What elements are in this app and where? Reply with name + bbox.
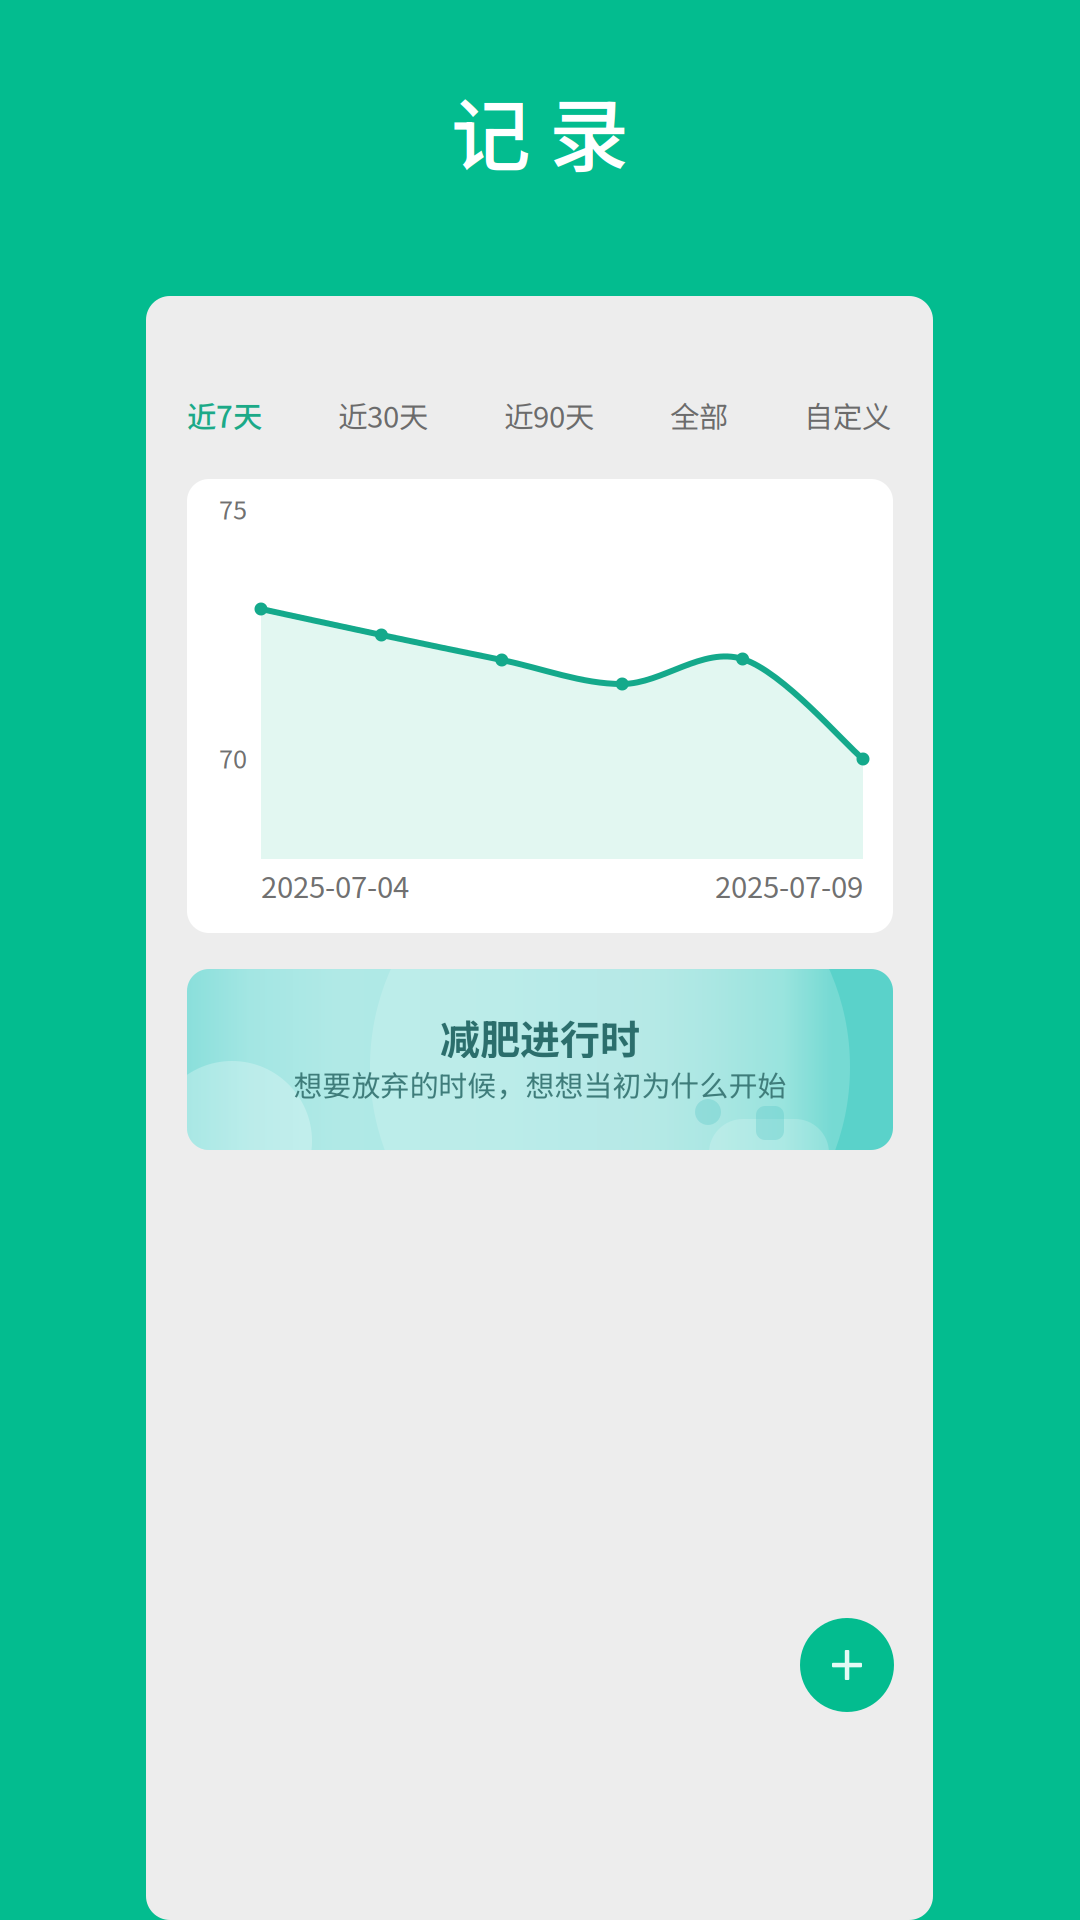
staticText: 75 [219, 490, 247, 527]
staticText: 记 录 [451, 72, 629, 188]
staticText: 近30天 [338, 394, 428, 436]
button[interactable]: Add record [800, 1618, 894, 1712]
staticText: 想要放弃的时候，想想当初为什么开始 [293, 1063, 786, 1105]
button[interactable]: 近7天 [187, 387, 262, 443]
staticText: 2025-07-09 [715, 864, 863, 906]
staticText: 全部 [670, 394, 728, 436]
button[interactable]: 全部 [670, 387, 728, 443]
button[interactable]: 近30天 [338, 387, 428, 443]
staticText: 70 [219, 739, 247, 776]
button[interactable]: 减肥进行时 [187, 969, 893, 1150]
staticText: 2025-07-04 [261, 864, 409, 906]
button[interactable]: 自定义 [804, 387, 891, 443]
staticText: 近90天 [504, 394, 594, 436]
button[interactable]: 近90天 [504, 387, 594, 443]
staticText: 近7天 [187, 394, 262, 436]
staticText: 减肥进行时 [440, 1008, 640, 1066]
staticText: 自定义 [804, 394, 891, 436]
